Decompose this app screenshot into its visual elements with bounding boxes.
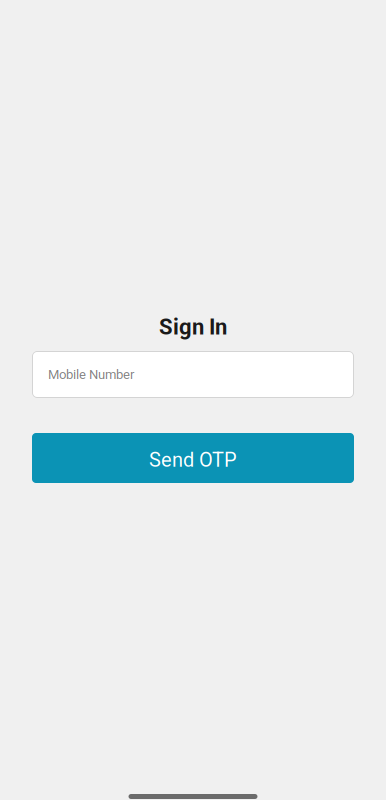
button[interactable]: Mobile Number [32,351,354,398]
staticText: Mobile Number [48,367,134,382]
staticText: Send OTP [149,448,237,472]
button[interactable]: Send OTP [32,433,354,483]
staticText: Sign In [159,314,227,340]
